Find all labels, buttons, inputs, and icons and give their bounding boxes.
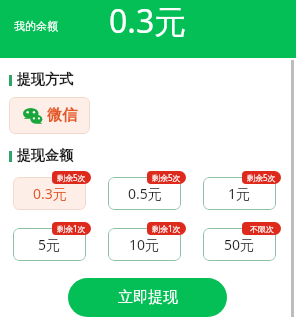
- staticText: 剩余5次: [57, 172, 86, 183]
- staticText: 1元: [228, 184, 251, 203]
- staticText: 不限次: [250, 224, 274, 234]
- staticText: 10元: [129, 235, 160, 254]
- staticText: 提现金额: [17, 147, 73, 165]
- button[interactable]: 0.3元: [13, 177, 86, 210]
- staticText: 5元: [38, 235, 61, 254]
- staticText: 剩余1次: [152, 223, 181, 234]
- staticText: 50元: [224, 235, 255, 254]
- staticText: 0.3元: [33, 184, 67, 203]
- staticText: 0.3元: [109, 0, 187, 43]
- staticText: 剩余5次: [152, 172, 181, 183]
- button[interactable]: 0.5元: [108, 177, 181, 210]
- staticText: 提现方式: [17, 71, 73, 89]
- button[interactable]: 微信: [9, 97, 90, 134]
- button[interactable]: 1元: [203, 177, 276, 210]
- staticText: 剩余1次: [57, 223, 86, 234]
- staticText: 剩余5次: [247, 172, 276, 183]
- staticText: 微信: [47, 106, 77, 125]
- staticText: 立即提现: [118, 288, 178, 307]
- button[interactable]: 50元: [203, 228, 276, 261]
- staticText: 我的余额: [14, 19, 58, 33]
- button[interactable]: 10元: [108, 228, 181, 261]
- button[interactable]: 5元: [13, 228, 86, 261]
- button[interactable]: 立即提现: [68, 278, 227, 317]
- staticText: 0.5元: [128, 184, 162, 203]
